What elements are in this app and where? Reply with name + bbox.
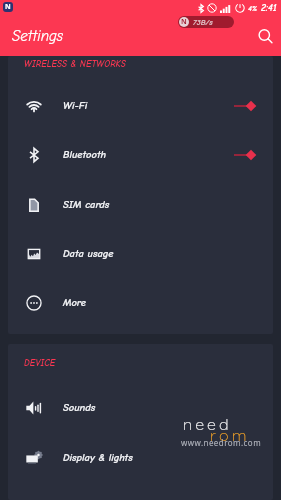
staticText: www.needrom.com: [181, 437, 262, 448]
staticText: Bluetooth: [63, 149, 106, 161]
staticText: rom: [210, 425, 251, 445]
button[interactable]: SIM cards: [8, 180, 273, 229]
button[interactable]: Wi-Fi: [8, 81, 273, 130]
button[interactable]: Bluetooth: [8, 130, 273, 180]
staticText: Sounds: [63, 402, 96, 414]
button[interactable]: Data usage: [8, 229, 273, 278]
staticText: N: [5, 2, 11, 12]
staticText: DEVICE: [24, 358, 56, 369]
button[interactable]: Toggle: [223, 93, 259, 119]
button[interactable]: Sounds: [8, 383, 273, 433]
staticText: 4%: [248, 4, 258, 13]
button[interactable]: More: [8, 278, 273, 328]
staticText: Wi-Fi: [63, 100, 88, 112]
staticText: N: [181, 17, 187, 27]
button[interactable]: Search: [247, 16, 281, 56]
staticText: WIRELESS & NETWORKS: [24, 59, 126, 70]
staticText: SIM cards: [63, 199, 110, 211]
staticText: need: [183, 414, 232, 434]
staticText: Data usage: [63, 248, 114, 260]
staticText: Settings: [12, 27, 64, 44]
staticText: 73B/s: [193, 18, 213, 27]
button[interactable]: Display & lights: [8, 433, 273, 483]
staticText: 2:41: [261, 2, 277, 14]
staticText: Display & lights: [63, 452, 133, 464]
staticText: More: [63, 297, 86, 309]
button[interactable]: Toggle: [223, 142, 259, 168]
